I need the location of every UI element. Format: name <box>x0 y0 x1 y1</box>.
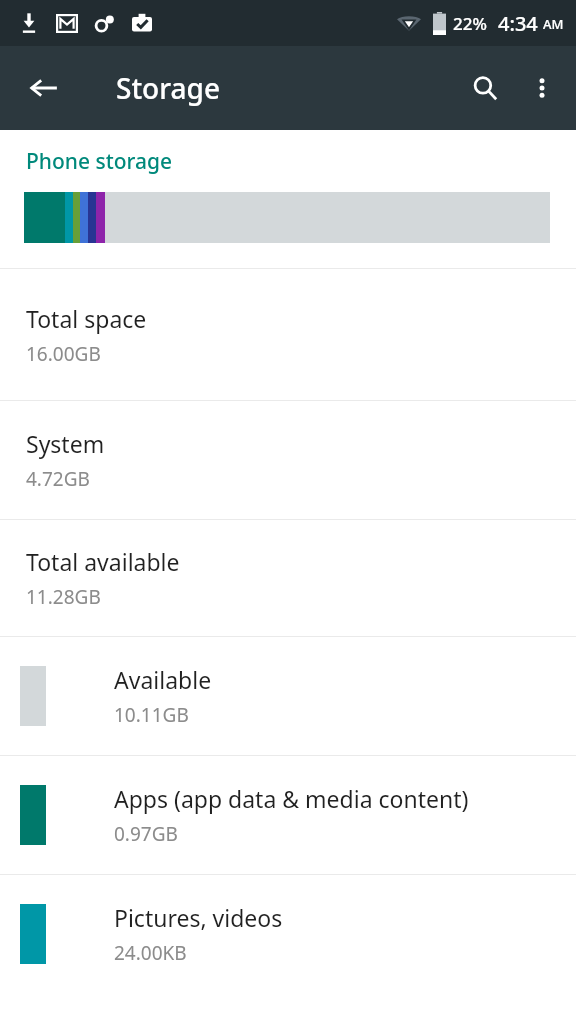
staticText: Total available <box>26 546 180 577</box>
staticText: 4.72GB <box>26 466 90 492</box>
staticText: Apps (app data & media content) <box>114 783 469 814</box>
button[interactable]: Navigate up <box>16 60 72 116</box>
staticText: 22% <box>453 12 487 35</box>
button[interactable]: Search <box>456 59 514 117</box>
staticText: 0.97GB <box>114 821 178 847</box>
button[interactable]: Apps (app data & media content) <box>0 756 576 874</box>
staticText: Total space <box>26 303 147 334</box>
staticText: Phone storage <box>26 147 173 176</box>
button[interactable]: Total space <box>0 269 576 400</box>
staticText: AM <box>543 15 564 33</box>
staticText: Pictures, videos <box>114 902 283 933</box>
staticText: System <box>26 428 105 459</box>
button[interactable]: Pictures, videos <box>0 875 576 993</box>
staticText: Available <box>114 664 212 695</box>
button[interactable]: Total available <box>0 520 576 636</box>
button[interactable]: System <box>0 401 576 519</box>
staticText: 16.00GB <box>26 341 101 367</box>
button[interactable]: More options <box>514 60 570 116</box>
staticText: 10.11GB <box>114 702 189 728</box>
staticText: Storage <box>116 69 220 107</box>
staticText: 11.28GB <box>26 584 101 610</box>
staticText: 4:34 <box>498 10 538 37</box>
button[interactable]: Available <box>0 637 576 755</box>
staticText: 24.00KB <box>114 940 187 966</box>
